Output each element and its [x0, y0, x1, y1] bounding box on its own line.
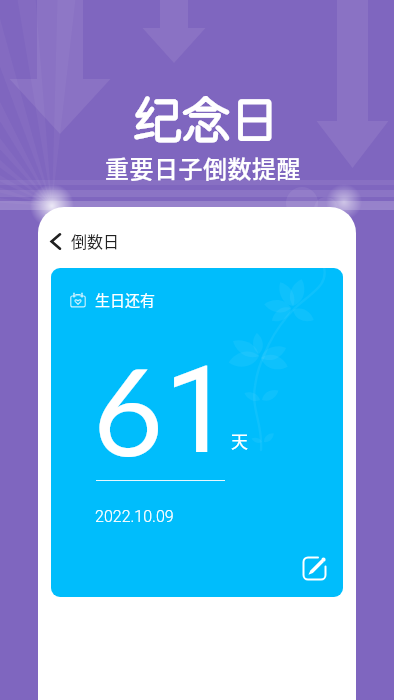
other: Back — [43, 229, 67, 253]
staticText: 重要日子倒数提醒 — [105, 150, 301, 185]
staticText: 生日还有 — [95, 289, 156, 311]
button[interactable]: 生日还有 — [51, 268, 343, 597]
staticText: 倒数日 — [71, 229, 120, 252]
staticText: 6 — [93, 337, 164, 482]
staticText: 天 — [231, 428, 248, 453]
button[interactable]: Edit — [302, 556, 327, 581]
button[interactable]: Back — [38, 207, 356, 268]
staticText: 纪念日 — [133, 90, 279, 147]
staticText: 1 — [164, 340, 233, 482]
staticText: 2022.10.09 — [95, 507, 174, 526]
staticText: 纪念日 — [133, 90, 279, 147]
